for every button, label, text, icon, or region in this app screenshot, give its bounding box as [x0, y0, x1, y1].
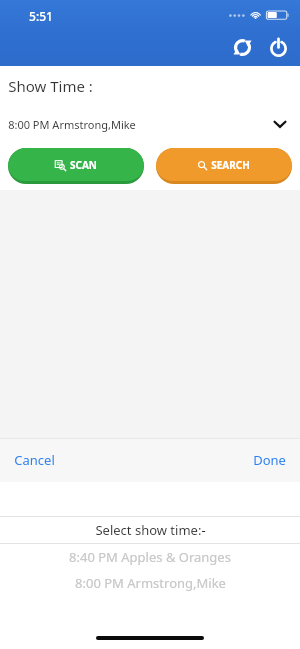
button[interactable]: Power	[262, 31, 294, 63]
staticText: SEARCH	[211, 158, 250, 172]
staticText: SCAN	[70, 158, 97, 172]
staticText: 8:40 PM Apples & Oranges	[69, 548, 231, 566]
button[interactable]: 8:40 PM Apples & Oranges	[0, 544, 300, 570]
button[interactable]: SEARCH	[156, 148, 292, 184]
button[interactable]: SCAN	[8, 148, 144, 184]
button[interactable]: 8:00 PM Armstrong,Mike	[0, 109, 300, 139]
button[interactable]: Done	[239, 443, 300, 477]
staticText: Cancel	[14, 451, 55, 469]
button[interactable]: Cancel	[0, 443, 69, 477]
staticText: 8:00 PM Armstrong,Mike	[75, 574, 226, 592]
staticText: Done	[253, 451, 286, 469]
button[interactable]: 8:00 PM Armstrong,Mike	[0, 570, 300, 596]
staticText: Show Time :	[8, 76, 93, 96]
staticText: Select show time:-	[95, 521, 206, 539]
button[interactable]: Refresh	[226, 31, 258, 63]
staticText: 5:51	[29, 8, 53, 24]
staticText: 8:00 PM Armstrong,Mike	[8, 117, 136, 132]
